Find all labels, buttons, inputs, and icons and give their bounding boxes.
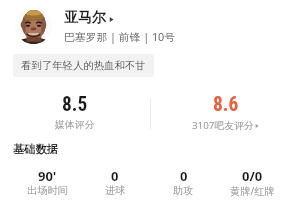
button[interactable]: 90' — [13, 167, 81, 198]
staticText: 基础数据 — [13, 142, 58, 156]
staticText: 90' — [38, 167, 57, 185]
other: Player photo — [15, 7, 52, 44]
staticText: 8.6 — [213, 93, 239, 116]
staticText: 0 — [180, 167, 188, 185]
button[interactable]: 8.5 — [0, 93, 150, 135]
staticText: 黄牌/红牌 — [230, 184, 275, 198]
staticText: 助攻 — [173, 184, 194, 197]
staticText: 媒体评分 — [55, 119, 95, 131]
staticText: 亚马尔 — [64, 9, 106, 27]
staticText: 0/0 — [242, 167, 263, 185]
staticText: 3107吧友评分 — [192, 119, 254, 132]
staticText: 出场时间 — [27, 184, 68, 197]
button[interactable]: 0 — [149, 167, 218, 198]
button[interactable]: 看到了年轻人的热血和不甘 — [13, 54, 154, 77]
button[interactable]: Player photo — [15, 7, 287, 44]
staticText: 8.5 — [62, 93, 88, 116]
staticText: 0 — [111, 167, 119, 185]
button[interactable]: 0/0 — [218, 167, 287, 199]
staticText: 看到了年轻人的热血和不甘 — [21, 59, 146, 72]
button[interactable]: 8.6 — [150, 93, 300, 135]
button[interactable]: 0 — [81, 167, 149, 198]
staticText: 进球 — [105, 184, 126, 197]
staticText: 巴塞罗那 | 前锋 | 10号 — [64, 29, 176, 44]
